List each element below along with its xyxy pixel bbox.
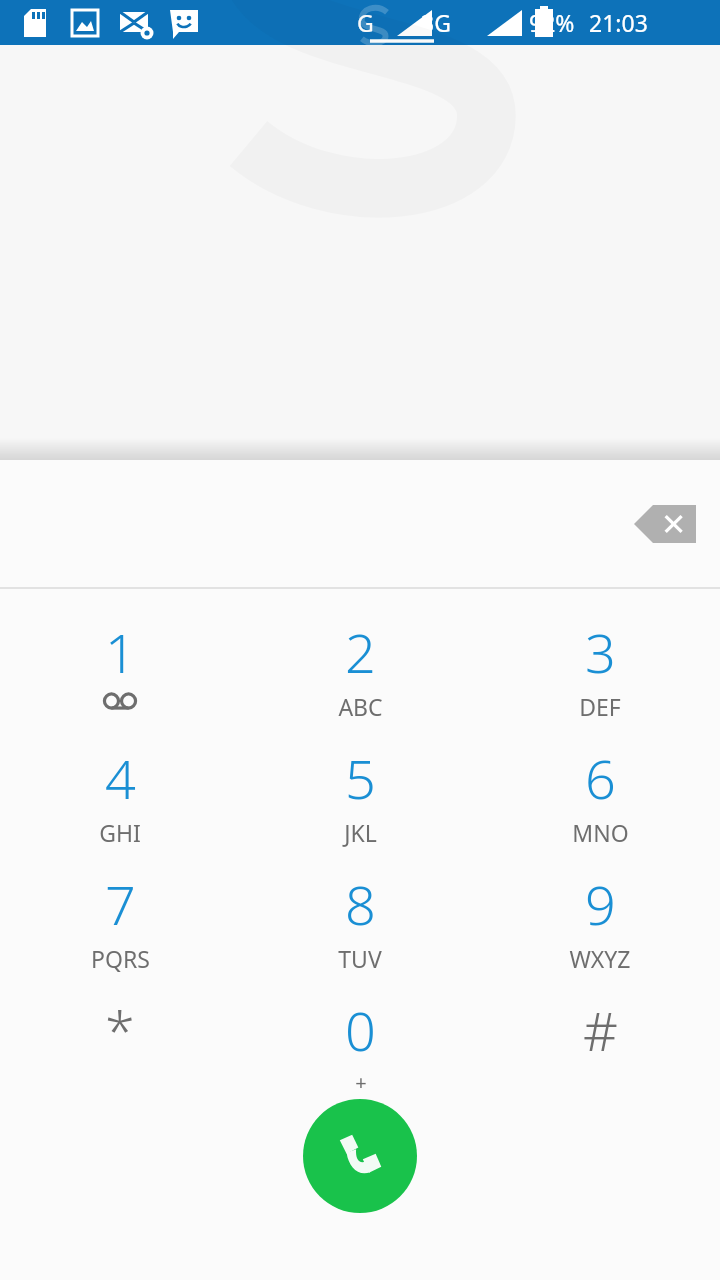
button[interactable]: Backspace <box>628 498 702 550</box>
button[interactable]: 2 <box>240 615 480 741</box>
staticText: TUV <box>338 943 382 974</box>
staticText: G <box>357 7 374 38</box>
staticText: 5 <box>345 741 376 815</box>
button[interactable]: Call <box>303 1099 417 1213</box>
staticText: 1 <box>105 615 136 689</box>
staticText: ABC <box>338 691 383 722</box>
button[interactable]: 1 <box>0 615 240 741</box>
staticText: 8 <box>345 867 376 941</box>
button[interactable]: 4 <box>0 741 240 867</box>
staticText: 3G <box>421 7 451 38</box>
staticText: 2 <box>345 615 376 689</box>
button[interactable]: 6 <box>480 741 720 867</box>
staticText: 21:03 <box>589 7 648 38</box>
button[interactable]: 0 <box>240 993 480 1107</box>
staticText: 92% <box>529 7 575 38</box>
button[interactable]: 9 <box>480 867 720 993</box>
staticText: * <box>105 993 135 1067</box>
staticText: 3 <box>585 615 616 689</box>
button[interactable]: 7 <box>0 867 240 993</box>
button[interactable]: * <box>0 993 240 1107</box>
staticText: WXYZ <box>569 943 631 974</box>
staticText: MNO <box>572 817 629 848</box>
staticText: PQRS <box>91 943 150 974</box>
button[interactable]: 5 <box>240 741 480 867</box>
staticText: DEF <box>579 691 621 722</box>
staticText: # <box>583 993 618 1067</box>
staticText: + <box>355 1069 367 1096</box>
staticText: 0 <box>345 993 376 1067</box>
button[interactable]: # <box>480 993 720 1107</box>
staticText: GHI <box>99 817 141 848</box>
staticText: 4 <box>105 741 136 815</box>
staticText: 7 <box>105 867 136 941</box>
staticText: JKL <box>344 817 377 848</box>
button[interactable]: 3 <box>480 615 720 741</box>
staticText: 9 <box>585 867 616 941</box>
button[interactable]: 8 <box>240 867 480 993</box>
staticText: 6 <box>585 741 616 815</box>
